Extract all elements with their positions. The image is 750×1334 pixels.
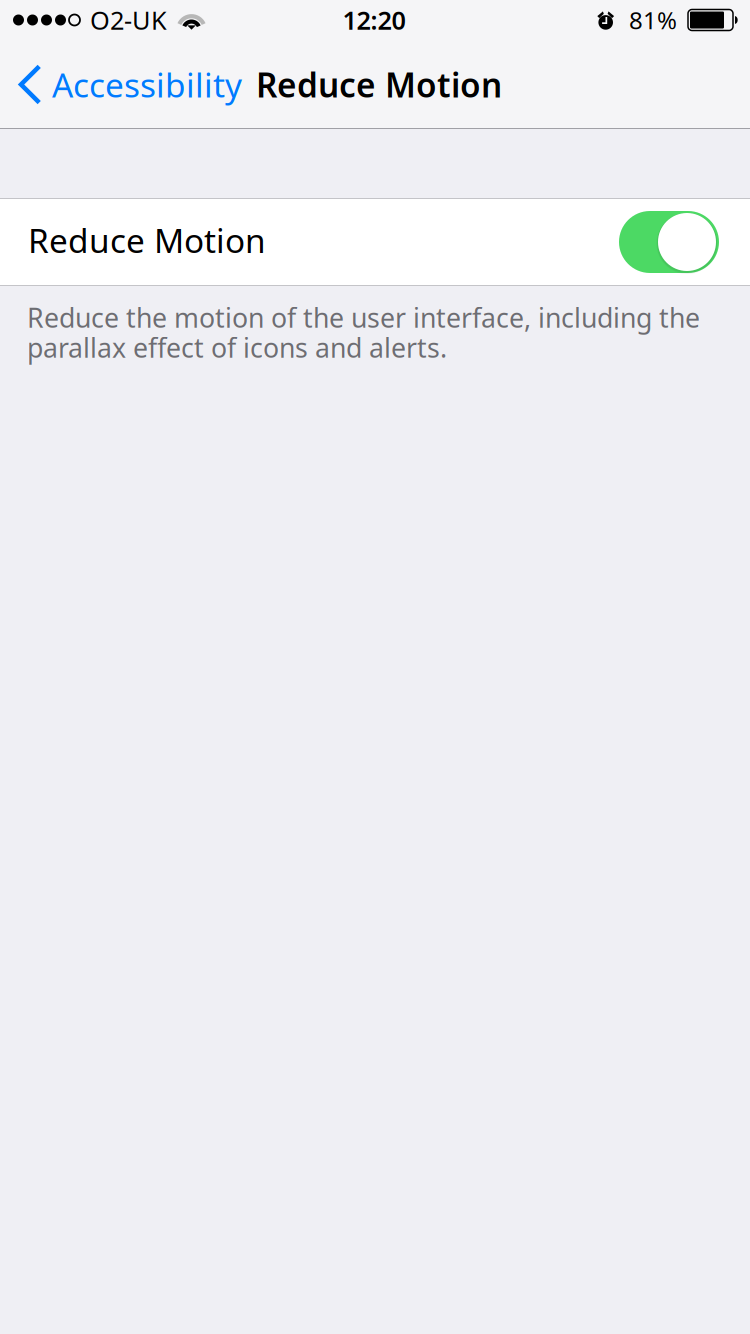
button[interactable]: Reduce Motion, on (619, 211, 719, 273)
button[interactable]: Accessibility (0, 40, 252, 129)
staticText: 12:20 (342, 3, 405, 37)
staticText: parallax effect of icons and alerts. (27, 330, 447, 365)
staticText: Accessibility (52, 62, 242, 107)
staticText: O2-UK (90, 3, 167, 37)
staticText: Reduce the motion of the user interface,… (27, 300, 700, 335)
staticText: Reduce Motion (256, 62, 502, 107)
staticText: 81% (629, 4, 677, 36)
staticText: Reduce Motion (28, 218, 266, 262)
button[interactable]: Reduce Motion (0, 198, 750, 286)
